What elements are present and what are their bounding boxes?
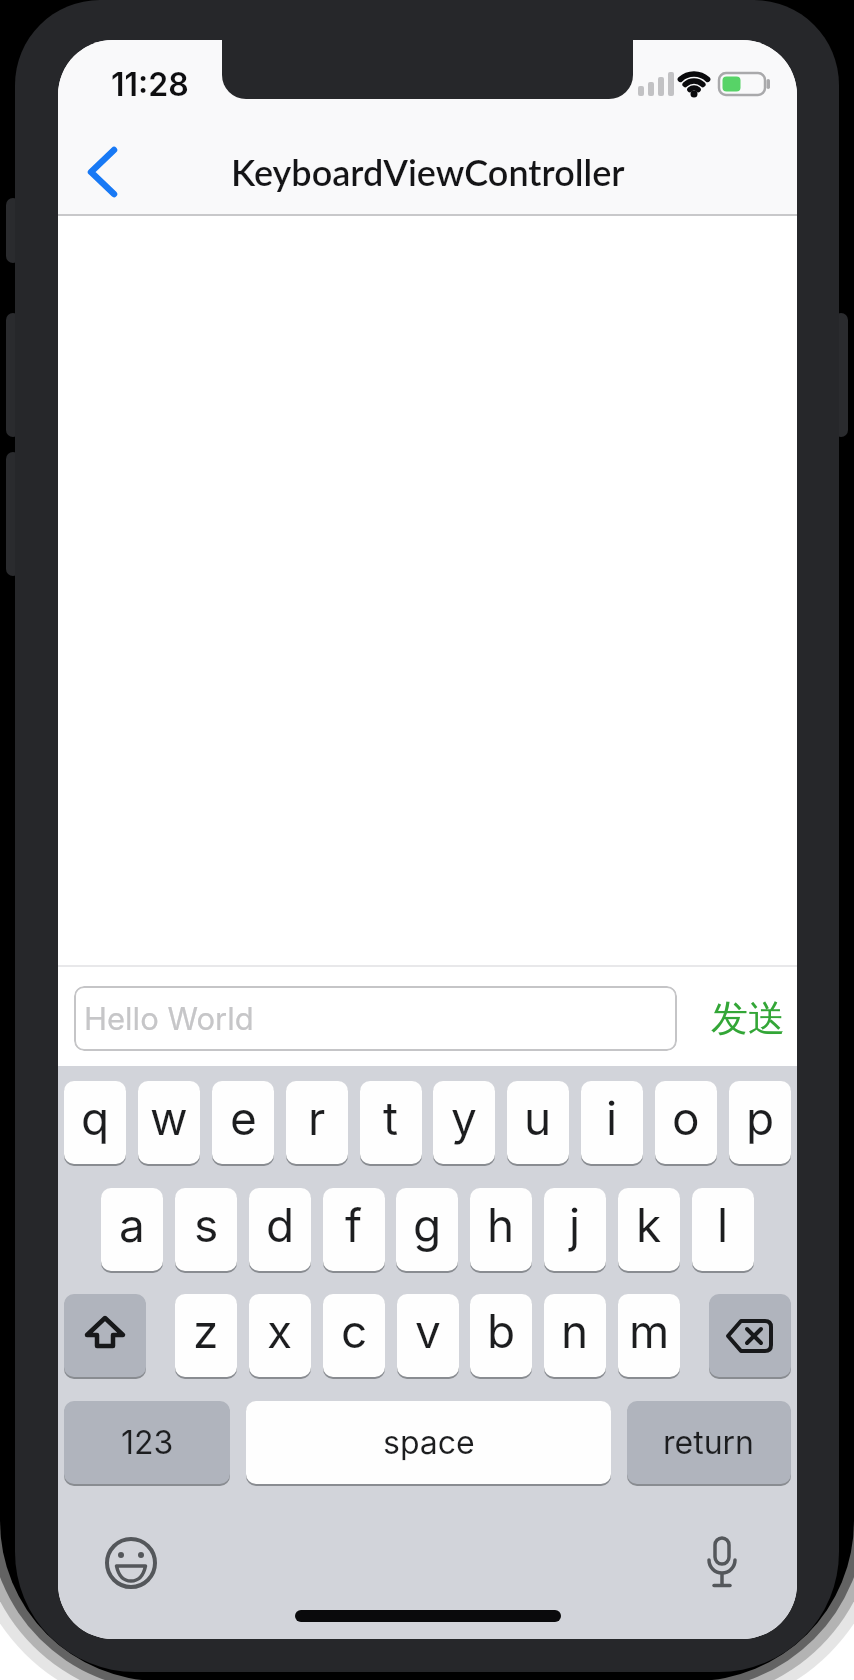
staticText: Hello World [84, 1000, 254, 1038]
staticText: p [746, 1090, 775, 1146]
button[interactable]: t [360, 1081, 422, 1164]
button[interactable]: s [175, 1188, 237, 1271]
staticText: 发送 [711, 995, 785, 1042]
button[interactable]: 123 [64, 1401, 230, 1484]
staticText: n [561, 1303, 589, 1359]
staticText: 11:28 [111, 65, 189, 104]
button[interactable]: u [507, 1081, 569, 1164]
button[interactable]: r [286, 1081, 348, 1164]
staticText: b [487, 1303, 516, 1359]
staticText: q [81, 1090, 110, 1146]
button[interactable]: w [138, 1081, 200, 1164]
staticText: y [451, 1090, 477, 1146]
staticText: u [524, 1090, 552, 1146]
button[interactable]: a [101, 1188, 163, 1271]
button[interactable]: k [618, 1188, 680, 1271]
button[interactable]: l [692, 1188, 754, 1271]
button[interactable] [702, 1534, 742, 1598]
staticText: v [415, 1303, 441, 1359]
button[interactable]: d [249, 1188, 311, 1271]
staticText: l [717, 1197, 729, 1253]
button[interactable]: n [544, 1294, 606, 1377]
staticText: g [413, 1197, 442, 1253]
staticText: o [672, 1090, 700, 1146]
button[interactable]: return [627, 1401, 791, 1484]
staticText: h [487, 1197, 515, 1253]
button[interactable]: q [64, 1081, 126, 1164]
staticText: f [345, 1197, 363, 1253]
button[interactable]: p [729, 1081, 791, 1164]
button[interactable]: c [323, 1294, 385, 1377]
staticText: t [383, 1090, 399, 1146]
staticText: c [341, 1303, 368, 1359]
button[interactable]: h [470, 1188, 532, 1271]
staticText: m [629, 1303, 670, 1359]
button[interactable]: 发送 [703, 986, 793, 1051]
staticText: i [606, 1090, 618, 1146]
button[interactable]: v [397, 1294, 459, 1377]
staticText: return [663, 1423, 755, 1462]
button[interactable] [83, 145, 123, 199]
staticText: 123 [121, 1423, 174, 1462]
button[interactable]: e [212, 1081, 274, 1164]
staticText: e [230, 1090, 257, 1146]
staticText: k [636, 1197, 662, 1253]
button[interactable]: o [655, 1081, 717, 1164]
staticText: KeyboardViewController [231, 150, 625, 193]
button[interactable]: i [581, 1081, 643, 1164]
button[interactable]: y [433, 1081, 495, 1164]
staticText: z [193, 1303, 219, 1359]
button[interactable]: f [323, 1188, 385, 1271]
button[interactable]: m [618, 1294, 680, 1377]
button[interactable] [104, 1536, 160, 1592]
button[interactable] [64, 1294, 146, 1377]
button[interactable]: z [175, 1294, 237, 1377]
button[interactable]: x [249, 1294, 311, 1377]
button[interactable] [709, 1294, 791, 1377]
staticText: x [267, 1303, 293, 1359]
staticText: r [308, 1090, 326, 1146]
button[interactable]: Hello World [74, 986, 677, 1051]
staticText: a [119, 1197, 145, 1253]
button[interactable]: g [396, 1188, 458, 1271]
button[interactable]: j [544, 1188, 606, 1271]
staticText: d [266, 1197, 295, 1253]
button[interactable]: b [470, 1294, 532, 1377]
staticText: j [569, 1197, 581, 1253]
staticText: s [194, 1197, 219, 1253]
button[interactable]: space [246, 1401, 611, 1484]
staticText: space [383, 1423, 475, 1462]
staticText: w [150, 1090, 188, 1146]
